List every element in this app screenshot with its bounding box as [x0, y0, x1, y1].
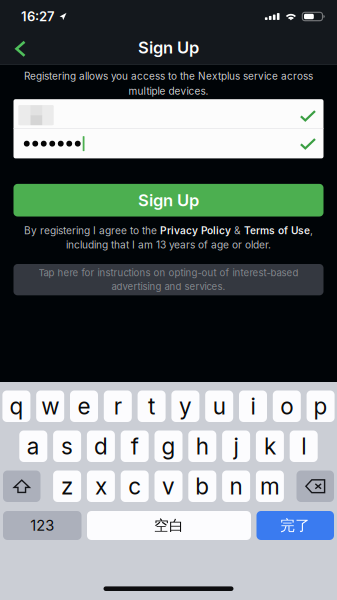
staticText: s	[61, 432, 73, 460]
button[interactable]: Shift	[3, 470, 40, 502]
staticText: z	[61, 472, 73, 500]
staticText: n	[230, 472, 243, 500]
staticText: w	[41, 392, 59, 420]
button[interactable]: t	[138, 390, 166, 422]
staticText: advertising and services.	[111, 281, 225, 292]
staticText: r	[114, 392, 122, 420]
staticText: 16:27	[21, 9, 55, 24]
button[interactable]: Delete	[296, 470, 334, 502]
button[interactable]: m	[256, 470, 284, 502]
staticText: g	[161, 432, 175, 460]
button[interactable]: s	[53, 430, 81, 462]
button[interactable]: n	[222, 470, 250, 502]
staticText: l	[301, 432, 306, 460]
button[interactable]: v	[154, 470, 182, 502]
button[interactable]: Back	[4, 29, 36, 66]
staticText: Sign Up	[138, 37, 199, 57]
staticText: i	[250, 392, 255, 420]
staticText: Tap here for instructions on opting-out …	[38, 267, 298, 279]
staticText: By registering I agree to the	[24, 224, 160, 237]
staticText: q	[9, 392, 23, 420]
staticText: b	[195, 472, 209, 500]
button[interactable]: y	[171, 390, 199, 422]
staticText: o	[280, 392, 293, 420]
staticText: multiple devices.	[128, 85, 208, 97]
button[interactable]: k	[256, 430, 284, 462]
staticText: &	[231, 224, 244, 237]
staticText: Sign Up	[138, 190, 199, 210]
button[interactable]: r	[104, 390, 132, 422]
staticText: p	[314, 392, 328, 420]
staticText: Registering allows you access to the Nex…	[24, 70, 313, 82]
button[interactable]: j	[222, 430, 250, 462]
button[interactable]: d	[87, 430, 115, 462]
staticText: a	[27, 432, 40, 460]
button[interactable]: Sign Up	[13, 184, 323, 216]
staticText: h	[196, 432, 209, 460]
staticText: including that I am 13 years of age or o…	[66, 239, 271, 251]
button[interactable]: h	[188, 430, 216, 462]
button[interactable]: z	[53, 470, 81, 502]
button[interactable]: b	[188, 470, 216, 502]
staticText: m	[260, 472, 280, 500]
button[interactable]: a	[19, 430, 47, 462]
button[interactable]: 123	[3, 511, 81, 540]
button[interactable]: f	[121, 430, 149, 462]
staticText: v	[162, 472, 175, 500]
button[interactable]: c	[121, 470, 149, 502]
staticText: ,	[310, 224, 313, 237]
button[interactable]: 完了	[256, 511, 334, 540]
staticText: t	[148, 392, 155, 420]
staticText: x	[95, 472, 107, 500]
button[interactable]: 空白	[87, 511, 251, 540]
staticText: Terms of Use	[244, 224, 310, 237]
staticText: Privacy Policy	[160, 224, 231, 237]
staticText: u	[213, 392, 226, 420]
button[interactable]: u	[205, 390, 233, 422]
staticText: f	[131, 432, 139, 460]
button[interactable]: q	[2, 390, 30, 422]
button[interactable]: p	[307, 390, 335, 422]
staticText: 空白	[154, 516, 184, 535]
staticText: k	[264, 432, 276, 460]
button[interactable]: Tap here for instructions on opting-out …	[13, 264, 323, 295]
button[interactable]: i	[239, 390, 267, 422]
staticText: 完了	[280, 516, 310, 535]
button[interactable]: o	[273, 390, 301, 422]
staticText: d	[94, 432, 108, 460]
button[interactable]: w	[36, 390, 64, 422]
staticText: j	[234, 432, 239, 460]
staticText: y	[179, 392, 192, 420]
staticText: e	[77, 392, 90, 420]
button[interactable]: g	[154, 430, 182, 462]
button[interactable]: e	[70, 390, 98, 422]
button[interactable]: x	[87, 470, 115, 502]
button[interactable]: l	[290, 430, 318, 462]
staticText: c	[128, 472, 141, 500]
staticText: 123	[30, 517, 54, 534]
